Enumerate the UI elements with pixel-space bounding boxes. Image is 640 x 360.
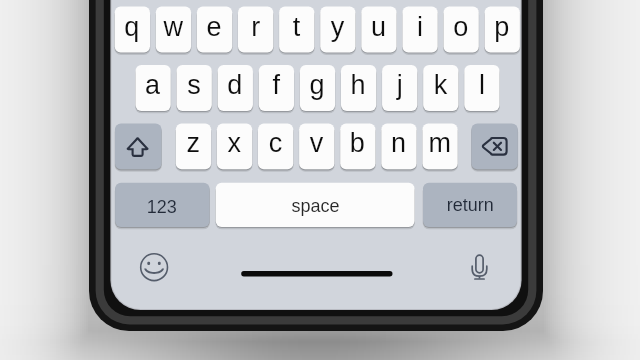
button[interactable]: v <box>299 123 334 169</box>
button[interactable]: return <box>423 183 517 227</box>
button[interactable]: j <box>382 65 417 111</box>
button[interactable]: t <box>279 7 314 53</box>
button[interactable]: Backspace <box>471 123 517 169</box>
button[interactable]: i <box>402 7 437 53</box>
button[interactable]: h <box>341 65 376 111</box>
button[interactable]: p <box>485 7 520 53</box>
button[interactable]: l <box>464 65 499 111</box>
button[interactable]: Emoji <box>138 251 170 283</box>
button[interactable]: r <box>238 7 273 53</box>
button[interactable]: k <box>423 65 458 111</box>
button[interactable]: d <box>218 65 253 111</box>
button[interactable]: u <box>361 7 396 53</box>
button[interactable]: b <box>340 123 375 169</box>
button[interactable]: space <box>216 183 415 227</box>
button[interactable]: s <box>177 65 212 111</box>
button[interactable]: q <box>115 7 150 53</box>
button[interactable]: z <box>176 123 211 169</box>
button[interactable]: Shift <box>115 123 162 169</box>
button[interactable]: w <box>156 7 191 53</box>
button[interactable]: n <box>381 123 416 169</box>
button[interactable]: x <box>217 123 252 169</box>
button[interactable]: f <box>259 65 294 111</box>
button[interactable]: Dictation microphone <box>464 251 496 283</box>
button[interactable]: m <box>422 123 457 169</box>
button[interactable]: g <box>300 65 335 111</box>
button[interactable]: Numbers 123 <box>115 183 210 227</box>
button[interactable]: y <box>320 7 355 53</box>
button[interactable]: c <box>258 123 293 169</box>
button[interactable]: o <box>444 7 479 53</box>
button[interactable]: a <box>135 65 170 111</box>
button[interactable]: e <box>197 7 232 53</box>
